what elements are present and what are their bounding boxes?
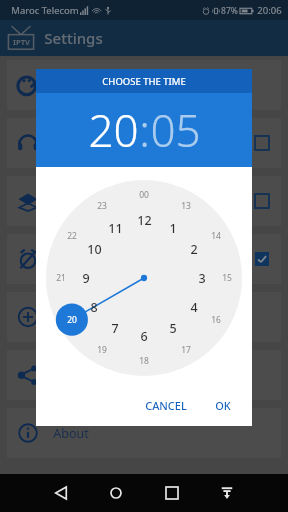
button[interactable]: Unchecked [255,194,269,208]
button[interactable]: Hide navigation bar [212,478,242,508]
staticText: 17 [181,344,191,356]
staticText: 11 [108,220,123,237]
staticText: 6 [140,328,148,345]
staticText: Theme [53,77,94,94]
staticText: 10 [87,241,102,258]
staticText: 19 [97,344,107,356]
staticText: 2 [190,241,198,258]
button[interactable]: Sleep Timer [0,230,288,288]
button[interactable]: CANCEL [136,392,196,419]
button[interactable]: Home [101,478,131,508]
staticText: 20 [88,100,139,160]
staticText: : [139,100,150,160]
staticText: CANCEL [145,398,187,413]
button[interactable]: Back [46,478,76,508]
staticText: 13 [181,200,191,212]
staticText: 3 [198,270,206,287]
button[interactable]: Share Application [0,346,288,404]
staticText: Video Layers [53,193,128,210]
staticText: 16 [211,314,221,326]
staticText: 4 [190,299,198,316]
button[interactable]: 20 [88,100,139,160]
button[interactable]: IPTV logo [7,24,35,52]
staticText: 87% [221,5,238,17]
button[interactable]: About [0,404,288,462]
button[interactable]: Audio Track [0,114,288,172]
staticText: 00 [139,189,149,201]
staticText: 15 [222,272,232,284]
button[interactable]: Unchecked [255,136,269,150]
staticText: 20:06 [257,4,282,17]
staticText: 7 [111,320,119,337]
staticText: 18 [139,355,149,367]
staticText: 22 [67,230,77,242]
staticText: Add Playlist [53,309,121,326]
staticText: 14 [211,230,221,242]
staticText: CHOOSE THE TIME [102,75,186,88]
button[interactable]: 05 [150,100,201,160]
button[interactable]: Add Playlist [0,288,288,346]
staticText: 21 [56,272,66,284]
button[interactable]: Recent apps [157,478,187,508]
staticText: 20 [67,314,77,326]
staticText: Audio Track [53,135,122,152]
button[interactable]: Checked [255,252,269,266]
staticText: 5 [169,320,177,337]
staticText: 8 [90,299,98,316]
staticText: Settings [44,28,103,48]
button[interactable]: Theme [0,56,288,114]
staticText: IPTV [13,37,30,47]
staticText: 12 [137,212,152,229]
staticText: OK [215,398,231,413]
staticText: Share Application [53,367,156,384]
staticText: 9 [82,270,90,287]
staticText: Maroc Telecom [11,4,79,17]
button[interactable]: Clock face, hour 20 selected [46,180,242,376]
staticText: 23 [97,200,107,212]
staticText: 1 [169,220,177,237]
staticText: Sleep Timer [53,251,123,268]
staticText: About [53,425,89,442]
button[interactable]: OK [206,392,240,419]
button[interactable]: Video Layers [0,172,288,230]
staticText: 05 [150,100,201,160]
